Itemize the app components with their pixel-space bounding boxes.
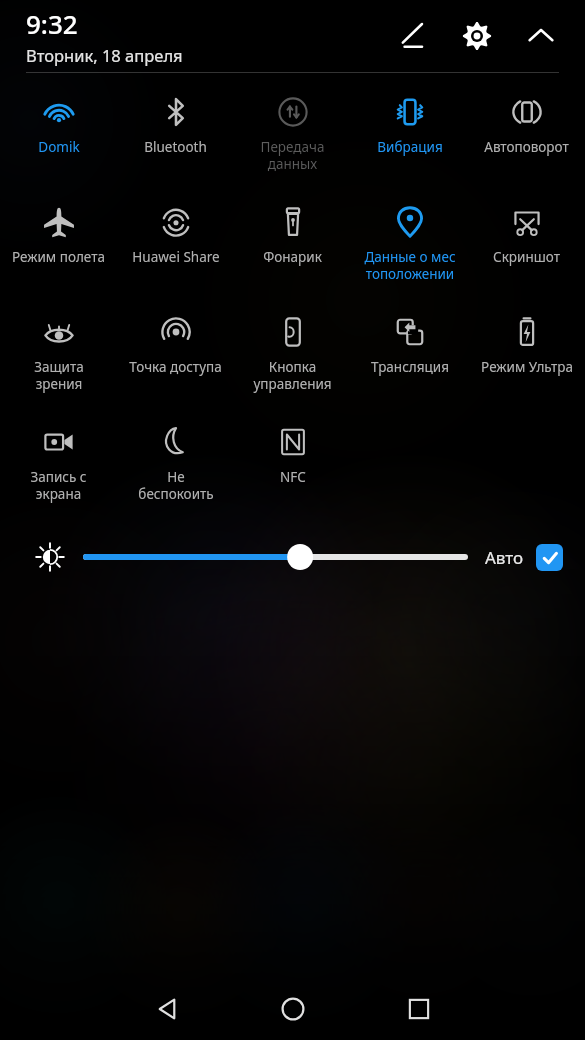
staticText: Вторник, 18 апреля <box>26 44 183 66</box>
staticText: Защита зрения <box>34 358 84 393</box>
button[interactable]: Трансляция <box>351 305 468 415</box>
staticText: Автоповорот <box>484 138 569 156</box>
staticText: Точка доступа <box>129 358 222 376</box>
staticText: Режим полета <box>12 248 105 266</box>
button[interactable]: Скриншот <box>468 195 585 305</box>
staticText: Bluetooth <box>144 138 207 156</box>
button[interactable]: Domik <box>0 85 117 195</box>
staticText: Domik <box>38 138 80 156</box>
staticText: Кнопка управления <box>253 358 332 393</box>
staticText: Трансляция <box>371 358 449 376</box>
staticText: 9:32 <box>26 6 78 41</box>
button[interactable]: Фонарик <box>234 195 351 305</box>
button[interactable]: Bluetooth <box>117 85 234 195</box>
staticText: Huawei Share <box>132 248 220 266</box>
button[interactable]: Не беспокоить <box>117 415 234 525</box>
button[interactable]: Edit <box>391 14 435 58</box>
button[interactable]: Данные о мес тоположении <box>351 195 468 305</box>
button[interactable]: Вибрация <box>351 85 468 195</box>
button[interactable]: Передача данных <box>234 85 351 195</box>
button[interactable]: Режим Ультра <box>468 305 585 415</box>
button[interactable]: Huawei Share <box>117 195 234 305</box>
button[interactable]: Home <box>258 978 328 1040</box>
button[interactable]: Режим полета <box>0 195 117 305</box>
staticText: Фонарик <box>263 248 322 266</box>
staticText: Авто <box>485 546 524 569</box>
staticText: Не беспокоить <box>138 468 214 503</box>
button[interactable]: Автоповорот <box>468 85 585 195</box>
button[interactable]: Brightness slider <box>86 540 465 574</box>
button[interactable]: Авто <box>485 544 563 571</box>
button[interactable]: Settings <box>455 14 499 58</box>
staticText: Данные о мес тоположении <box>364 248 456 283</box>
staticText: Вибрация <box>377 138 443 156</box>
button[interactable]: Brightness <box>30 537 70 577</box>
button[interactable]: Защита зрения <box>0 305 117 415</box>
button[interactable]: NFC <box>234 415 351 525</box>
staticText: Передача данных <box>260 138 325 173</box>
button[interactable]: Back <box>132 978 202 1040</box>
button[interactable]: Recents <box>384 978 454 1040</box>
staticText: Запись с экрана <box>30 468 87 503</box>
button[interactable]: Collapse <box>519 14 563 58</box>
button[interactable]: Кнопка управления <box>234 305 351 415</box>
button[interactable]: Запись с экрана <box>0 415 117 525</box>
staticText: Скриншот <box>493 248 560 266</box>
staticText: Режим Ультра <box>481 358 573 376</box>
button[interactable]: Точка доступа <box>117 305 234 415</box>
staticText: NFC <box>280 468 306 486</box>
